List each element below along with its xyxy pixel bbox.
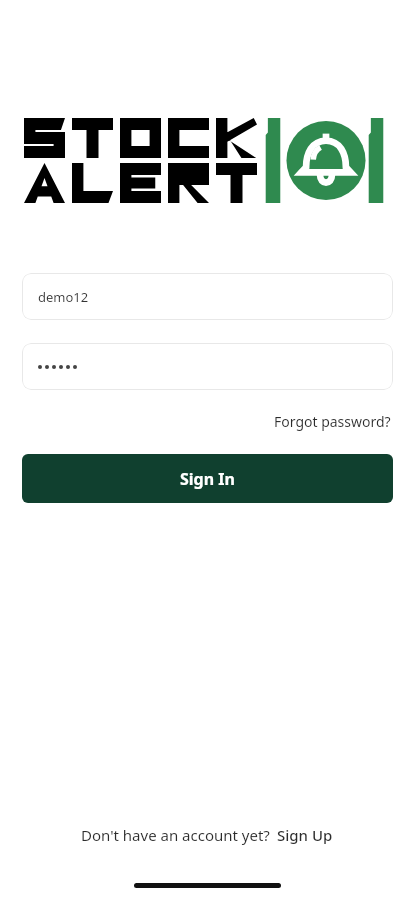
button[interactable]: Sign Up [270,823,335,847]
button[interactable]: Sign In [22,454,393,503]
staticText: demo12 [38,288,89,306]
staticText: Don't have an account yet? [81,825,270,845]
staticText: Sign In [180,468,235,490]
button[interactable]: demo12 [22,273,393,320]
staticText: Sign Up [277,825,333,845]
button[interactable]: Forgot password? [272,409,393,434]
button[interactable] [22,343,393,390]
staticText: Forgot password? [274,412,391,431]
